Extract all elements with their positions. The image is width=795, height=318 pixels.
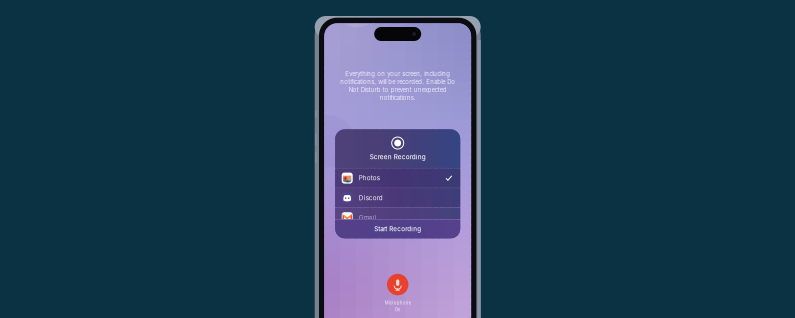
staticText: Everything on your screen, including	[345, 70, 450, 77]
staticText: Photos	[359, 174, 380, 182]
staticText: Microphone	[385, 300, 411, 305]
staticText: Gmail	[359, 214, 377, 221]
staticText: Discord	[359, 194, 383, 202]
button[interactable]: Gmail	[335, 208, 460, 227]
staticText: notifications.	[380, 94, 416, 101]
button[interactable]: Start Recording	[335, 220, 460, 238]
button[interactable]: Microphone On	[385, 274, 411, 312]
staticText: notifications, will be recorded. Enable …	[340, 78, 455, 85]
staticText: Screen Recording	[370, 153, 426, 161]
staticText: Not Disturb to prevent unexpected	[349, 86, 447, 93]
staticText: On	[395, 307, 401, 312]
button[interactable]: Discord	[335, 188, 460, 207]
button[interactable]: Photos	[335, 168, 460, 188]
staticText: Start Recording	[374, 225, 421, 233]
